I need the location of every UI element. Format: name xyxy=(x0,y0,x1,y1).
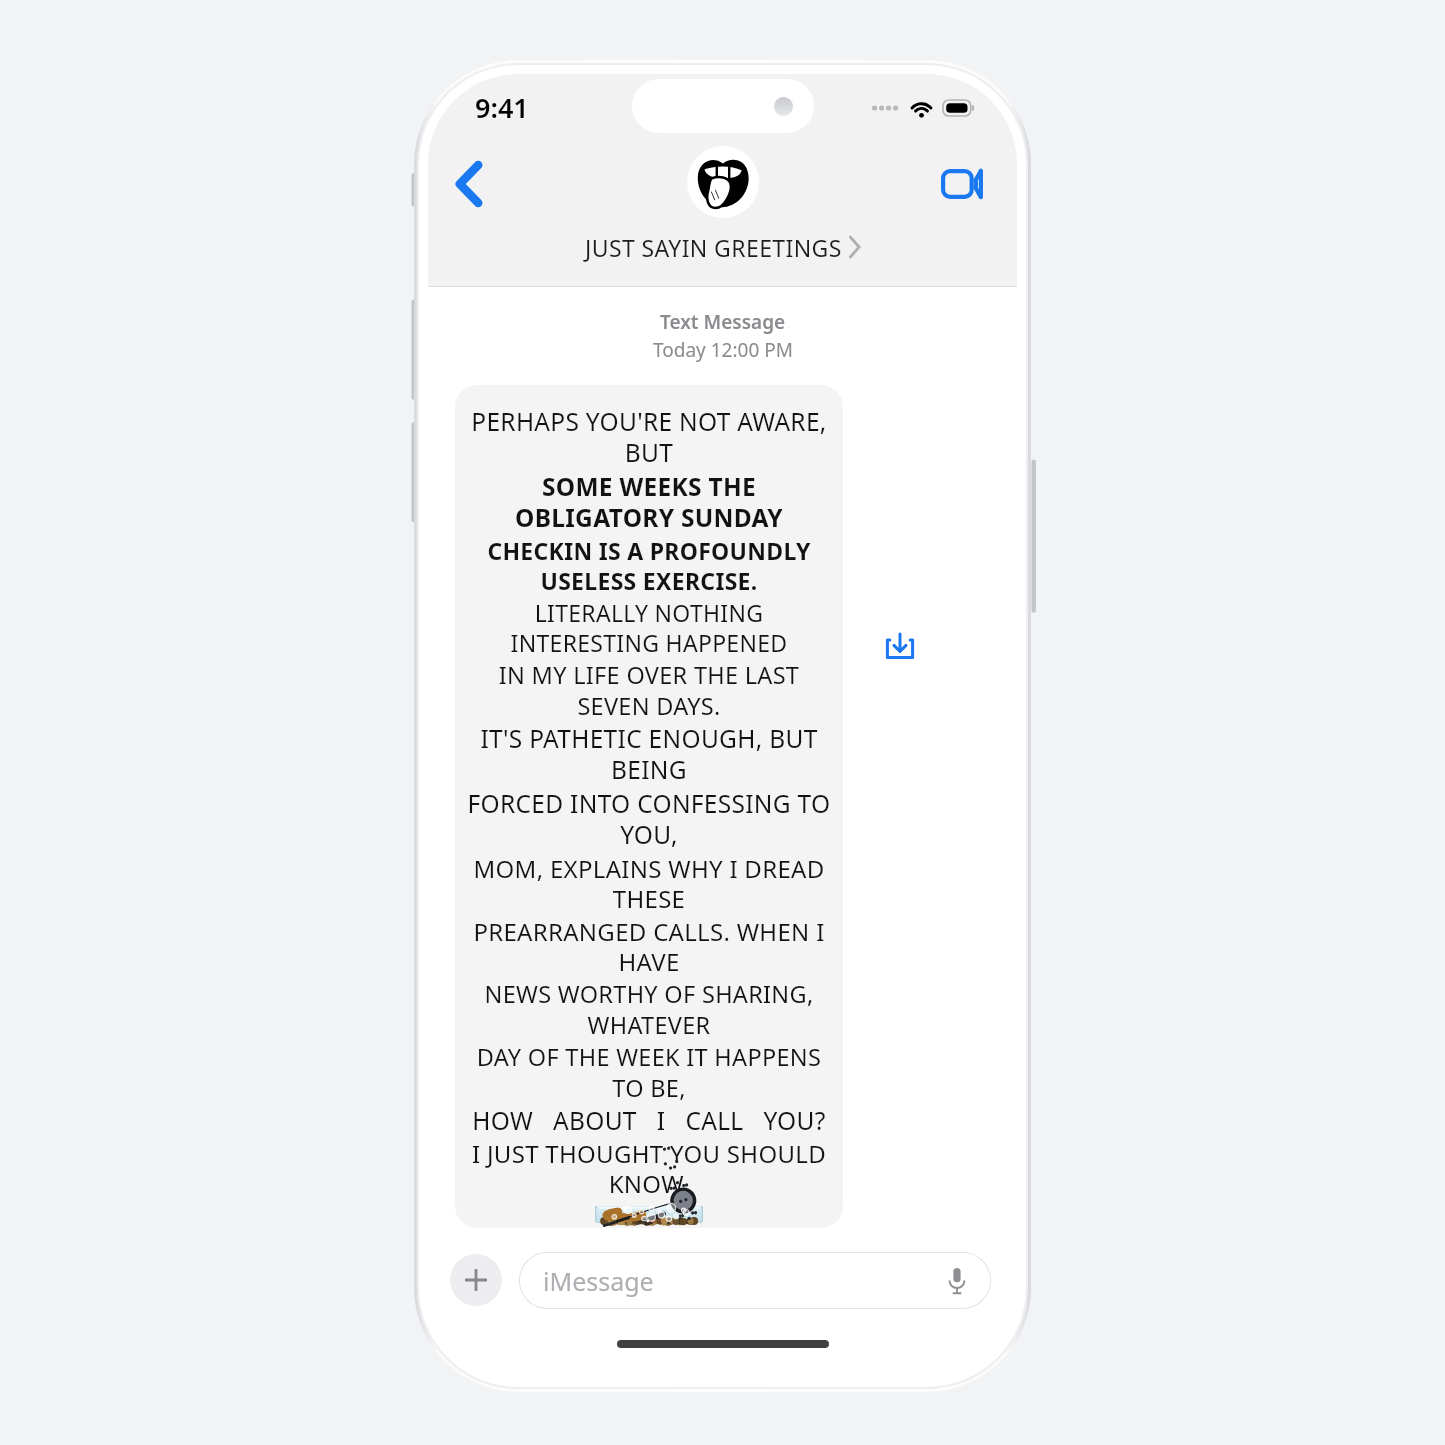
button[interactable]: Contact avatar xyxy=(687,146,759,218)
staticText: LITERALLY NOTHING INTERESTING HAPPENED xyxy=(465,597,833,659)
button[interactable]: Save image xyxy=(877,623,923,669)
staticText: HOW ABOUT I CALL YOU? xyxy=(465,1104,833,1137)
staticText: NEWS WORTHY OF SHARING, WHATEVER xyxy=(465,978,833,1041)
staticText: DAY OF THE WEEK IT HAPPENS TO BE, xyxy=(465,1041,833,1104)
staticText: SOME WEEKS THE OBLIGATORY SUNDAY xyxy=(465,470,833,535)
staticText: MOM, EXPLAINS WHY I DREAD THESE xyxy=(465,852,833,915)
button[interactable]: JUST SAYIN GREETINGS xyxy=(428,232,1017,286)
staticText: PREARRANGED CALLS. WHEN I HAVE xyxy=(465,915,833,978)
staticText: Today 12:00 PM xyxy=(653,337,793,363)
staticText: IT'S PATHETIC ENOUGH, BUT BEING xyxy=(465,722,833,787)
staticText: I JUST THOUGHT YOU SHOULD KNOW. xyxy=(465,1137,833,1200)
staticText: CHECKIN IS A PROFOUNDLY USELESS EXERCISE… xyxy=(465,535,833,597)
staticText: Text Message xyxy=(660,309,786,335)
staticText: PERHAPS YOU'RE NOT AWARE, BUT xyxy=(465,405,833,470)
staticText: 9:41 xyxy=(475,89,529,126)
staticText: IN MY LIFE OVER THE LAST SEVEN DAYS. xyxy=(465,659,833,722)
button[interactable]: Back xyxy=(438,153,500,215)
button[interactable]: FaceTime video call xyxy=(931,153,993,215)
button[interactable]: Add attachment xyxy=(450,1254,502,1306)
staticText: iMessage xyxy=(543,1264,654,1298)
staticText: JUST SAYIN GREETINGS xyxy=(585,232,842,263)
staticText: FORCED INTO CONFESSING TO YOU, xyxy=(465,787,833,852)
button[interactable]: PERHAPS YOU'RE NOT AWARE, BUT xyxy=(455,385,843,1228)
button[interactable]: iMessage xyxy=(519,1252,991,1309)
button[interactable]: Dictate xyxy=(937,1261,977,1301)
